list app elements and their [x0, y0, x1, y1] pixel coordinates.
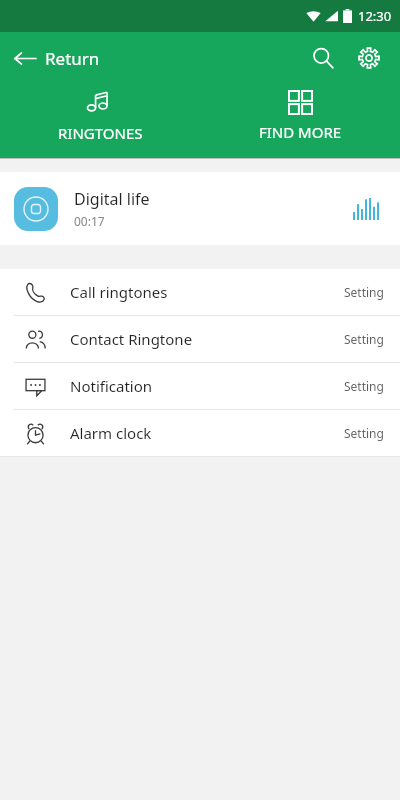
- staticText: 00:17: [74, 213, 105, 229]
- staticText: Alarm clock: [70, 423, 344, 443]
- staticText: Setting: [344, 425, 384, 441]
- staticText: RINGTONES: [58, 123, 143, 143]
- button[interactable]: Contact Ringtone: [0, 316, 400, 362]
- staticText: Notification: [70, 376, 344, 396]
- staticText: Return: [45, 47, 100, 70]
- button[interactable]: RINGTONES: [0, 84, 200, 155]
- staticText: FIND MORE: [259, 122, 342, 142]
- staticText: 12:30: [358, 7, 392, 25]
- button[interactable]: FIND MORE: [200, 84, 400, 154]
- staticText: Digital life: [74, 188, 150, 210]
- staticText: Setting: [344, 378, 384, 394]
- staticText: Setting: [344, 331, 384, 347]
- button[interactable]: Notification: [0, 363, 400, 409]
- staticText: Call ringtones: [70, 282, 344, 302]
- button[interactable]: Call ringtones: [0, 269, 400, 315]
- button[interactable]: Settings: [346, 35, 392, 81]
- staticText: Contact Ringtone: [70, 329, 344, 349]
- button[interactable]: Alarm clock: [0, 410, 400, 456]
- button[interactable]: Return: [0, 38, 114, 79]
- button[interactable]: Digital life: [0, 172, 400, 245]
- button[interactable]: Now playing: [346, 189, 386, 229]
- button[interactable]: Search: [300, 35, 346, 81]
- staticText: Setting: [344, 284, 384, 300]
